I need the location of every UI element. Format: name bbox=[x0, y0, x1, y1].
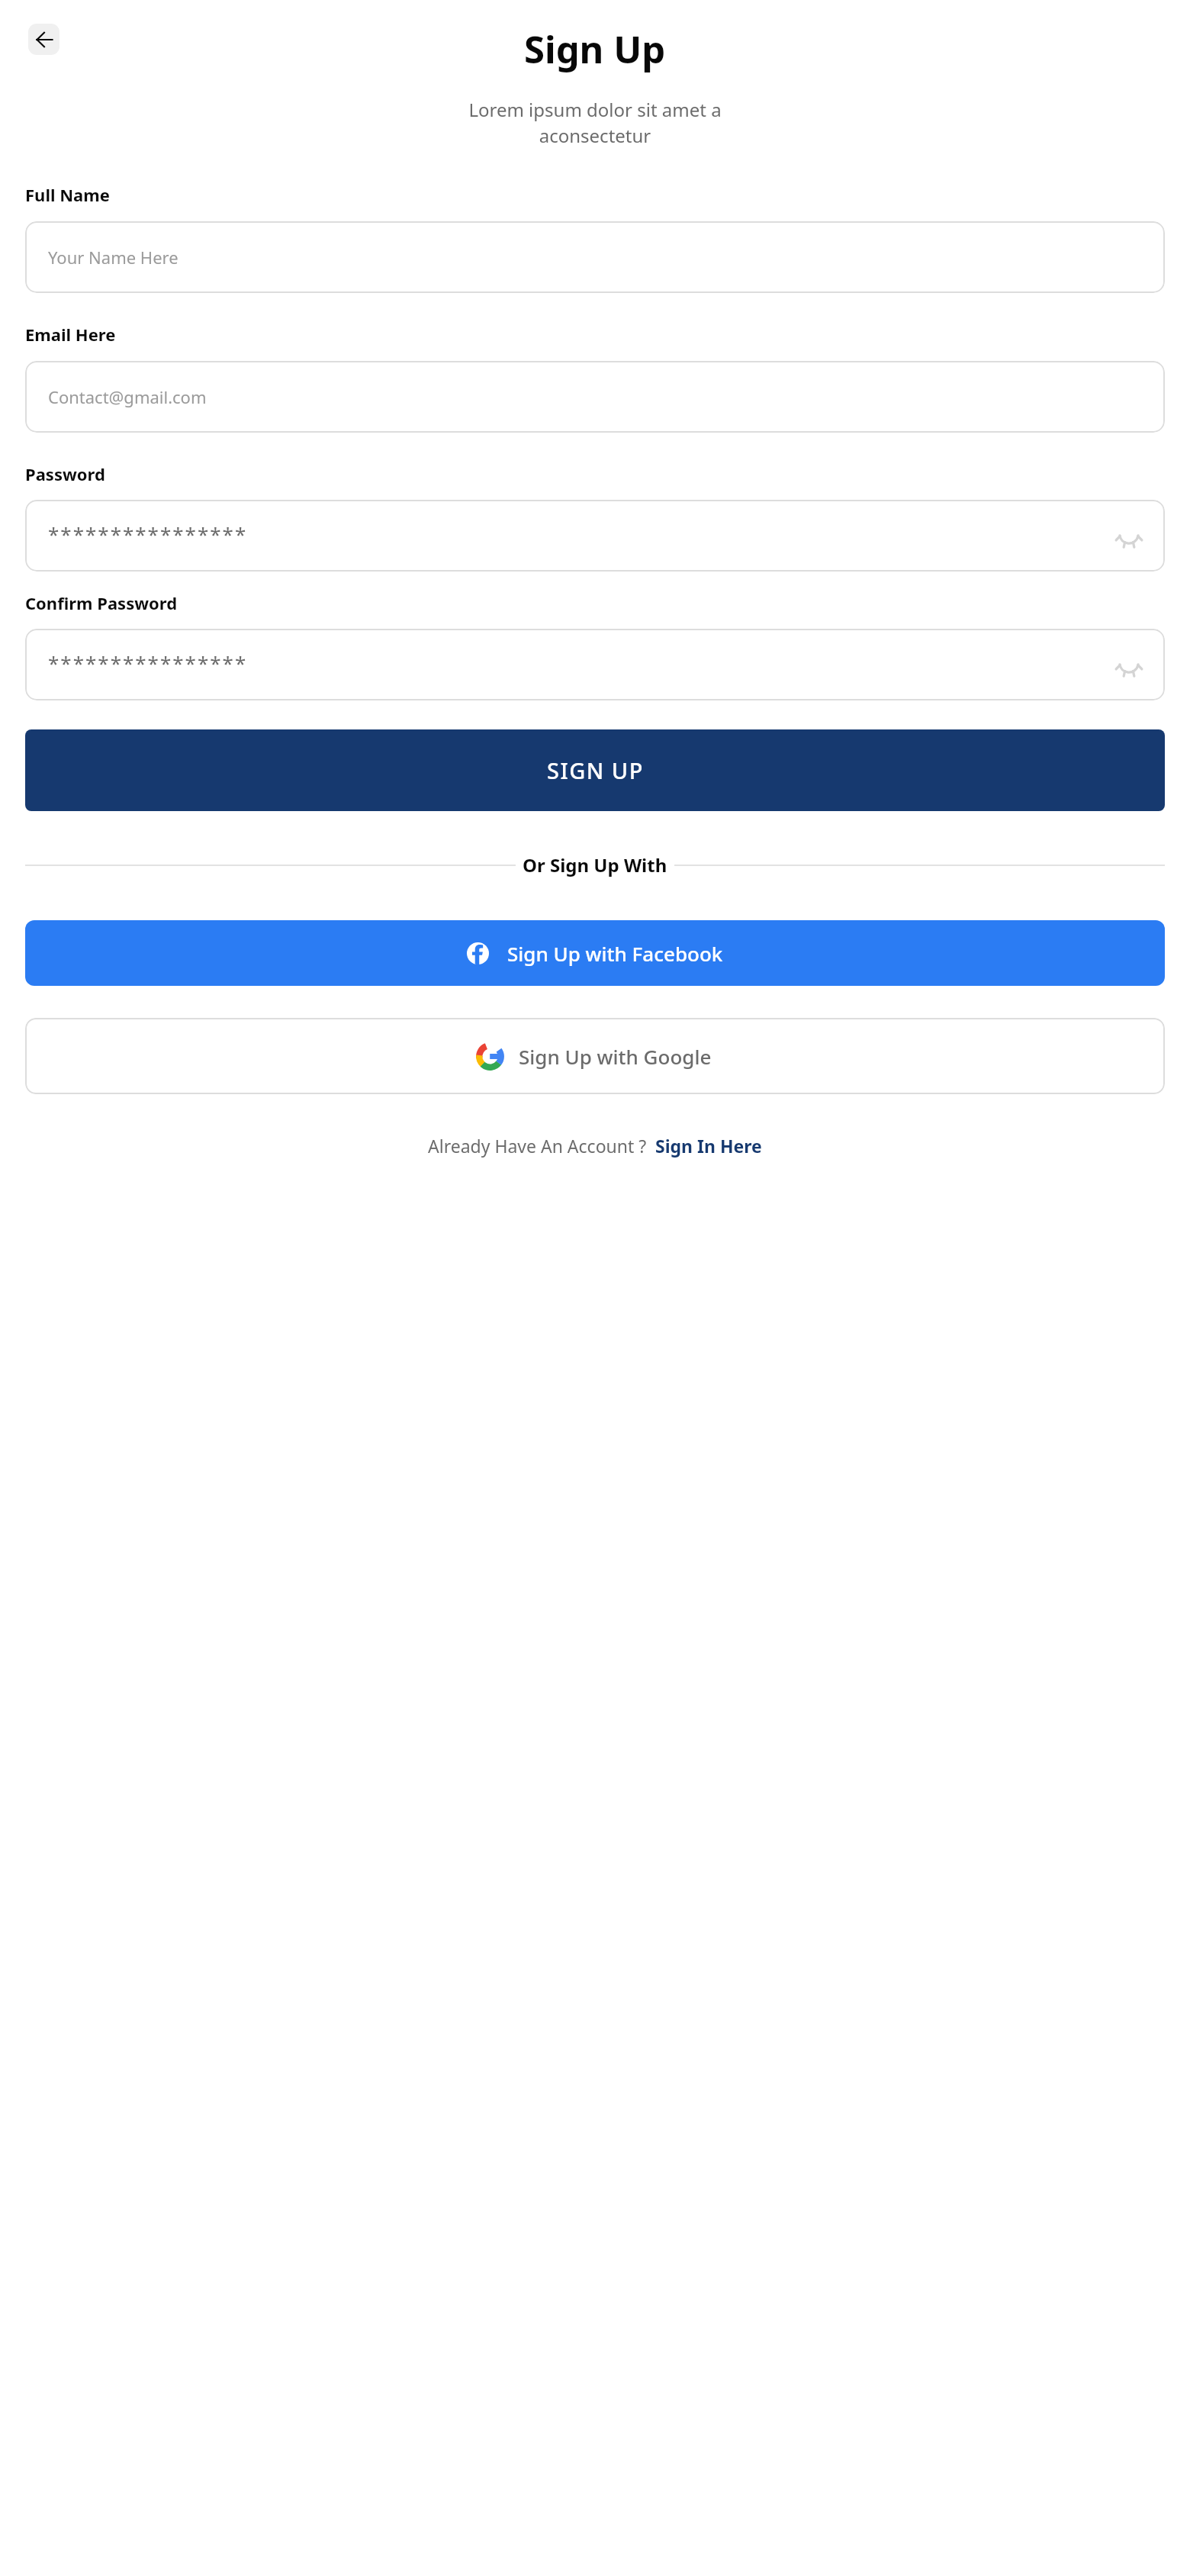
button[interactable]: Your Name Here bbox=[25, 221, 1165, 293]
button[interactable]: **************** bbox=[25, 500, 1165, 572]
staticText: Contact@gmail.com bbox=[48, 385, 207, 408]
staticText: Sign Up with Facebook bbox=[507, 940, 723, 967]
button[interactable]: Sign Up with Facebook bbox=[25, 920, 1165, 986]
staticText: Confirm Password bbox=[25, 591, 178, 614]
button[interactable]: Sign Up with Google bbox=[25, 1018, 1165, 1094]
button[interactable]: Contact@gmail.com bbox=[25, 361, 1165, 433]
staticText: Sign Up bbox=[524, 24, 666, 75]
button[interactable]: Sign In Here bbox=[655, 1134, 762, 1158]
staticText: Sign Up with Google bbox=[519, 1043, 712, 1070]
button[interactable]: **************** bbox=[25, 629, 1165, 700]
staticText: Full Name bbox=[25, 183, 110, 206]
staticText: Or Sign Up With bbox=[523, 852, 667, 877]
staticText: Sign In Here bbox=[655, 1134, 762, 1158]
staticText: **************** bbox=[48, 520, 248, 547]
button[interactable]: Back bbox=[28, 24, 59, 55]
button[interactable]: SIGN UP bbox=[25, 729, 1165, 811]
staticText: Password bbox=[25, 462, 105, 485]
staticText: Lorem ipsum dolor sit amet a aconsectetu… bbox=[0, 97, 1190, 148]
staticText: SIGN UP bbox=[547, 755, 644, 785]
button[interactable]: Show password bbox=[1110, 517, 1148, 555]
staticText: **************** bbox=[48, 649, 248, 676]
staticText: Email Here bbox=[25, 323, 116, 346]
button[interactable]: Show password bbox=[1110, 646, 1148, 684]
staticText: Your Name Here bbox=[48, 246, 178, 269]
staticText: Already Have An Account ? bbox=[428, 1134, 647, 1158]
